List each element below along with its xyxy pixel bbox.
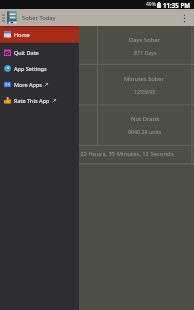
button[interactable]: More options: [177, 10, 191, 26]
staticText: 11:35 PM: [163, 1, 191, 9]
staticText: 871 Days, 22 Hours, 35 Minutes, 12 Secon…: [52, 150, 174, 158]
staticText: 1255695: [134, 88, 156, 95]
staticText: 49%: [146, 1, 156, 8]
staticText: More Apps: [14, 81, 42, 88]
button[interactable]: Rate This App: [0, 92, 79, 108]
staticText: Quit Date: [14, 49, 39, 56]
staticText: Minutes Sober: [124, 75, 165, 83]
button[interactable]: Minutes Sober: [97, 65, 192, 105]
staticText: Home: [14, 31, 30, 38]
staticText: 871 Days: [134, 49, 157, 56]
button[interactable]: Not Drank: [97, 105, 192, 145]
staticText: App Settings: [14, 65, 47, 72]
staticText: Not Drank: [131, 115, 160, 123]
button[interactable]: Quit Date: [0, 44, 79, 60]
staticText: Days Sober: [129, 36, 161, 44]
button[interactable]: App Settings: [0, 60, 79, 76]
button[interactable]: Days Sober: [97, 26, 192, 64]
staticText: 9040.28 units: [128, 128, 162, 135]
button[interactable]: Open navigation drawer: [1, 12, 5, 24]
button[interactable]: Home: [0, 26, 79, 43]
staticText: Sober Today: [22, 14, 56, 22]
button[interactable]: More Apps: [0, 76, 79, 92]
staticText: Rate This App: [14, 97, 50, 104]
